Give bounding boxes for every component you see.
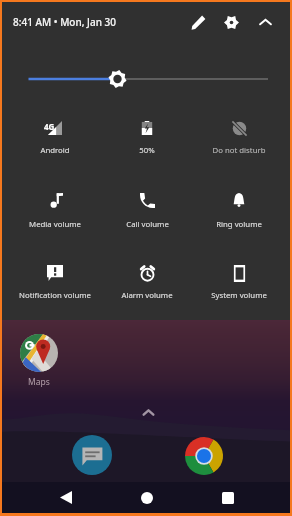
staticText: System volume [211,290,267,301]
button[interactable]: Settings [218,9,244,35]
button[interactable] [193,110,285,154]
staticText: Maps [28,376,50,388]
button[interactable]: Chrome [185,437,223,475]
button[interactable]: Back [45,482,86,513]
button[interactable] [193,182,285,226]
button[interactable]: Recent apps [207,482,248,513]
button[interactable]: Date and time [13,12,116,32]
staticText: Android [40,145,70,156]
button[interactable]: Messages [72,435,112,475]
button[interactable] [9,182,101,226]
button[interactable]: Maps [12,334,66,392]
button[interactable] [9,110,101,154]
button[interactable]: Edit [185,9,211,35]
button[interactable]: Brightness [22,69,274,89]
button[interactable]: Open app drawer [137,401,159,423]
staticText: 4G [44,121,55,132]
staticText: Notification volume [19,290,91,301]
button[interactable] [101,182,193,226]
staticText: Do not disturb [212,145,266,156]
button[interactable]: Home [126,482,167,513]
staticText: Call volume [126,219,169,230]
staticText: 8:41 AM • Mon, Jan 30 [13,15,116,29]
button[interactable] [101,255,193,299]
staticText: 50% [139,145,155,156]
staticText: Media volume [29,219,81,230]
staticText: Alarm volume [121,290,173,301]
staticText: Ring volume [216,219,262,230]
button[interactable] [193,255,285,299]
button[interactable] [9,255,101,299]
button[interactable]: Collapse quick settings [252,9,278,35]
button[interactable] [101,110,193,154]
